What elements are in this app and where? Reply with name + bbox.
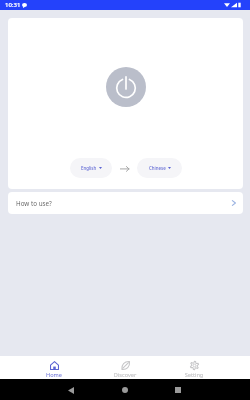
button[interactable]: Setting [172,356,216,379]
button[interactable]: Discover [103,356,147,379]
button[interactable]: Back [62,381,80,399]
button[interactable]: Home [116,381,134,399]
button[interactable]: How to use? [8,192,243,214]
staticText: English [81,165,97,171]
staticText: Home [32,371,76,379]
staticText: Discover [103,371,147,379]
staticText: How to use? [16,199,52,208]
button[interactable]: Power [106,67,146,107]
button[interactable]: English [70,158,112,178]
button[interactable]: Home [32,356,76,379]
button[interactable]: Chinese [137,158,182,178]
staticText: Setting [172,371,216,379]
staticText: Chinese [149,165,166,171]
staticText: 10:31 [5,1,21,9]
button[interactable]: Recents [169,381,187,399]
